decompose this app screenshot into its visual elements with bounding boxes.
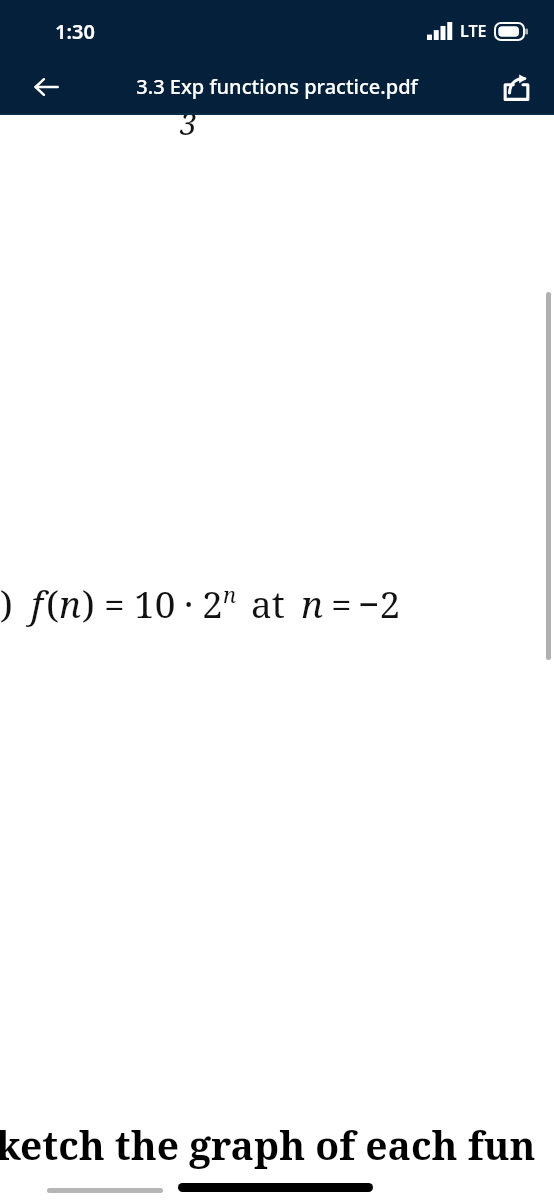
staticText: ketch the graph of each fun: [0, 1118, 536, 1171]
staticText: 10: [134, 578, 176, 628]
staticText: ·: [184, 578, 194, 628]
staticText: LTE: [460, 20, 487, 42]
staticText: ): [0, 578, 13, 628]
staticText: −2: [358, 578, 401, 628]
button[interactable]: Share: [490, 61, 542, 113]
staticText: n: [59, 578, 82, 628]
staticText: n: [223, 579, 237, 609]
staticText: =: [331, 578, 352, 628]
staticText: ): [82, 578, 95, 628]
staticText: n: [301, 578, 324, 628]
staticText: at: [251, 578, 285, 628]
staticText: =: [104, 578, 125, 628]
button[interactable]: Back: [20, 61, 72, 113]
staticText: (: [46, 578, 59, 628]
staticText: f: [31, 578, 43, 628]
staticText: 1:30: [55, 18, 95, 45]
staticText: 3: [180, 103, 197, 144]
staticText: 3.3 Exp functions practice.pdf: [136, 73, 418, 100]
staticText: 2: [202, 578, 223, 628]
